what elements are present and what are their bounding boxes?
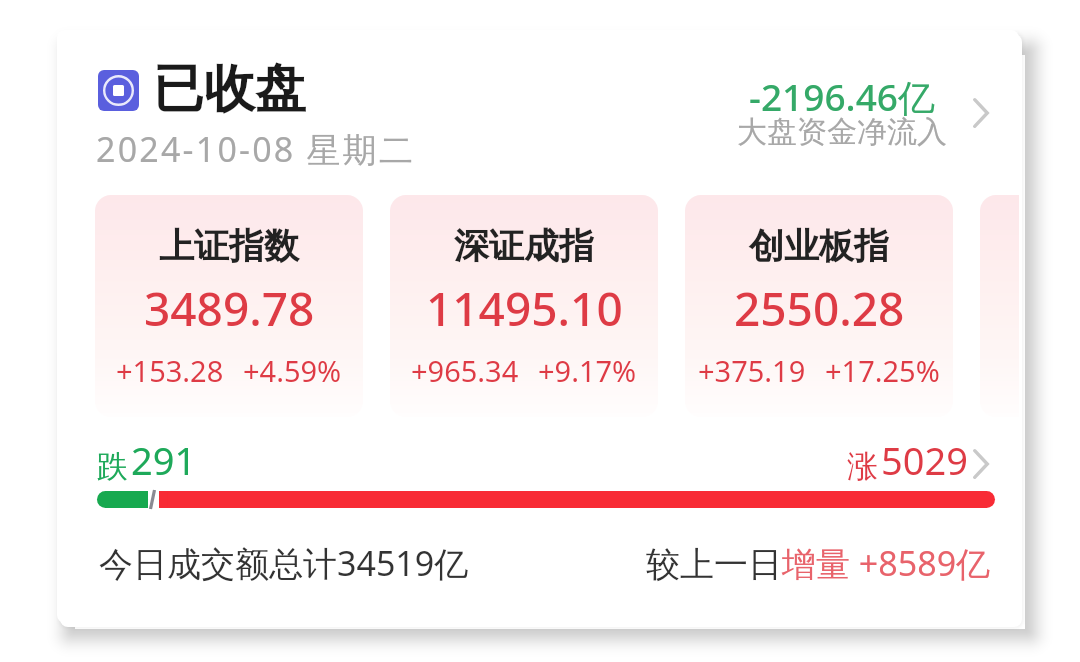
staticText: 3489.78 [144, 277, 315, 340]
button[interactable]: Advancers and decliners [958, 439, 1004, 489]
staticText: +153.28 [116, 351, 224, 390]
other: Net capital flow details [973, 98, 989, 128]
button[interactable] [980, 195, 1019, 417]
staticText: 涨 [847, 447, 878, 486]
staticText: 今日成交额总计34519亿 [99, 540, 469, 586]
staticText: 11495.10 [426, 277, 623, 340]
staticText: 291 [131, 434, 197, 486]
staticText: 5029 [881, 434, 968, 486]
other: Advancers and decliners [973, 449, 989, 479]
staticText: +965.34 [411, 351, 519, 390]
button[interactable]: 今日成交额总计34519亿 [87, 530, 482, 588]
button[interactable]: 创业板指 [685, 195, 953, 417]
staticText: 上证指数 [159, 224, 299, 268]
staticText: +17.25% [825, 351, 940, 390]
button[interactable]: 深证成指 [390, 195, 658, 417]
staticText: 深证成指 [454, 224, 594, 268]
button[interactable]: -2196.46亿 [712, 64, 1004, 164]
staticText: -2196.46亿 [717, 71, 967, 122]
staticText: 跌 [97, 447, 128, 486]
staticText: 已收盘 [153, 57, 306, 121]
button[interactable]: 较上一日增量 +8589亿 [635, 530, 1000, 588]
staticText: 较上一日增量 +8589亿 [646, 540, 991, 586]
staticText: 2024-10-08 星期二 [96, 126, 416, 172]
staticText: +9.17% [538, 351, 637, 390]
button[interactable]: 上证指数 [95, 195, 363, 417]
button[interactable]: 已收盘 [87, 60, 507, 175]
staticText: +375.19 [698, 351, 806, 390]
staticText: 2550.28 [734, 277, 905, 340]
button[interactable]: 跌 [57, 430, 1019, 525]
staticText: +4.59% [243, 351, 342, 390]
staticText: 大盘资金净流入 [717, 113, 967, 151]
staticText: 创业板指 [749, 224, 889, 268]
